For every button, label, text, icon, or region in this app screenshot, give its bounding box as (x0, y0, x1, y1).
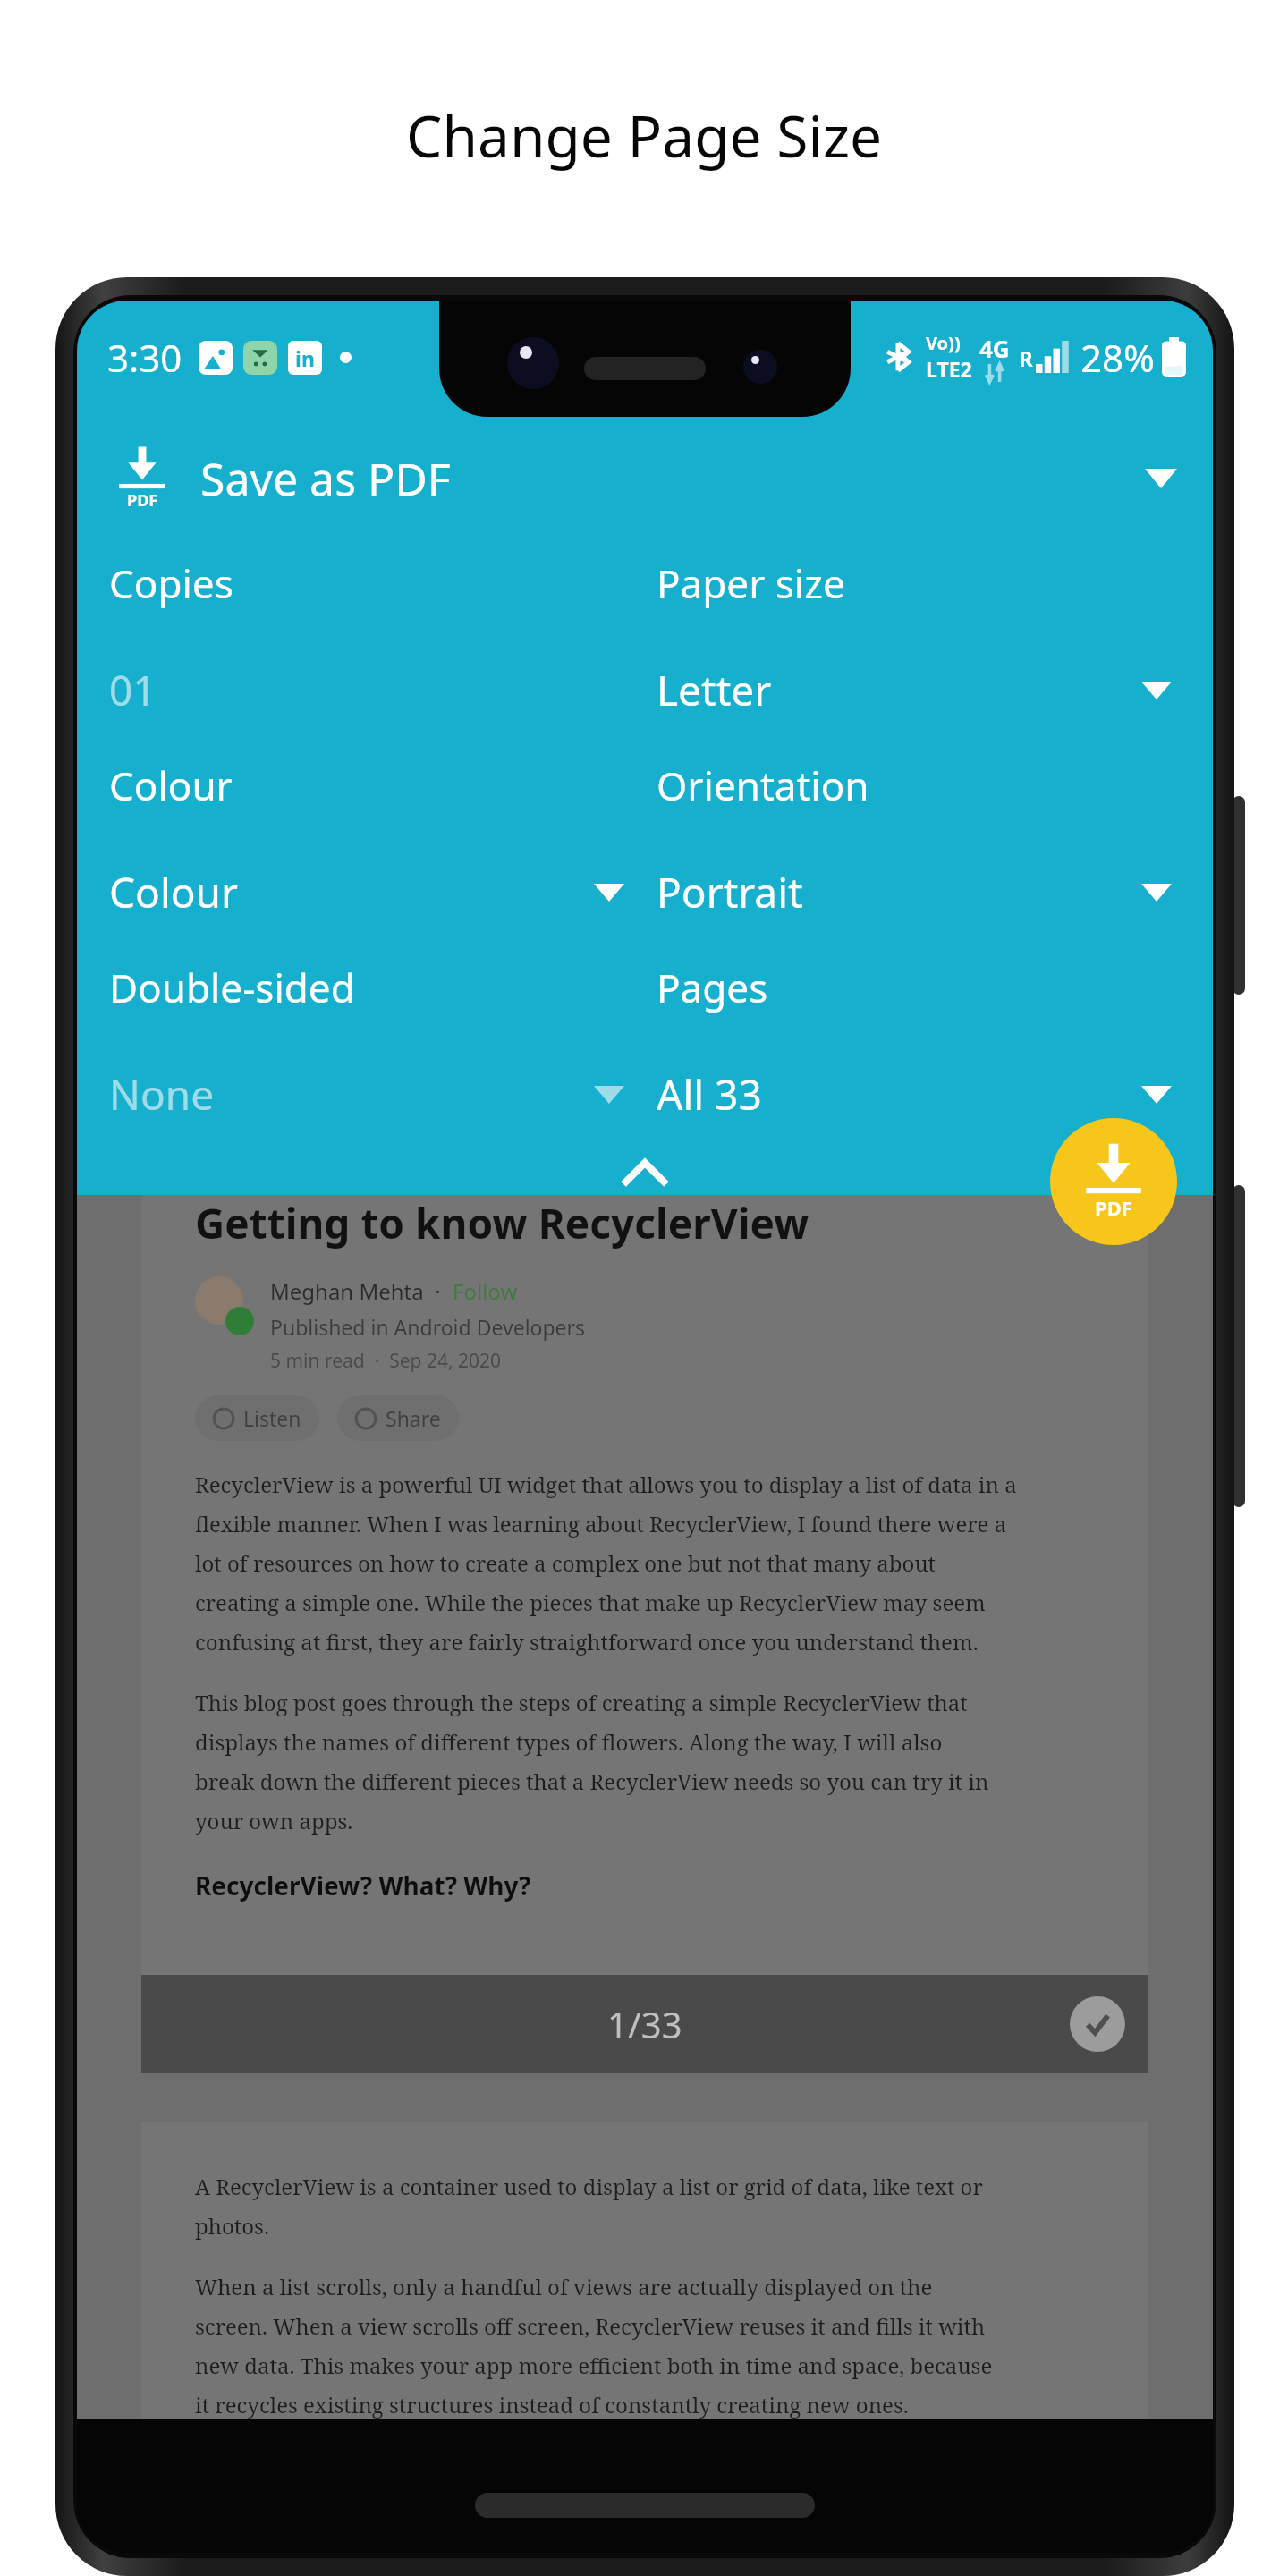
button[interactable]: Paper size (657, 544, 1181, 746)
staticText: it recycles existing structures instead … (195, 2390, 909, 2419)
staticText: 01 (109, 662, 157, 718)
staticText: Vo)) (926, 331, 961, 355)
staticText: Follow (453, 1276, 518, 1306)
staticText: your own apps. (195, 1806, 353, 1835)
staticText: PDF (127, 489, 158, 512)
staticText: 1/33 (607, 2000, 682, 2048)
staticText: RecyclerView? What? Why? (195, 1868, 531, 1902)
staticText: Save as PDF (200, 448, 451, 509)
staticText: break down the different pieces that a R… (195, 1767, 989, 1796)
staticText: Colour (109, 758, 233, 812)
staticText: Letter (657, 662, 772, 718)
staticText: PDF (1095, 1194, 1132, 1221)
button[interactable]: Collapse print options (77, 1150, 1213, 1195)
staticText: flexible manner. When I was learning abo… (195, 1509, 1007, 1538)
button[interactable]: 1/33 (141, 1975, 1148, 2073)
staticText: Pages (657, 961, 768, 1014)
button[interactable]: Pages (657, 948, 1181, 1150)
button[interactable]: Listen (195, 1395, 319, 1441)
button[interactable]: PDF (77, 413, 1213, 544)
staticText: When a list scrolls, only a handful of v… (195, 2272, 933, 2301)
other: Page selected (1070, 1996, 1125, 2052)
staticText: Portrait (657, 864, 803, 920)
button[interactable]: Copies (109, 544, 633, 746)
staticText: Listen (243, 1404, 301, 1432)
button[interactable]: Orientation (657, 746, 1181, 948)
staticText: R (1019, 343, 1033, 373)
staticText: Colour (109, 864, 239, 920)
staticText: Orientation (657, 758, 869, 812)
staticText: LTE2 (926, 355, 972, 383)
staticText: lot of resources on how to create a comp… (195, 1548, 936, 1578)
staticText: This blog post goes through the steps of… (195, 1688, 968, 1717)
staticText: screen. When a view scrolls off screen, … (195, 2311, 986, 2341)
button[interactable]: Double-sided (109, 948, 633, 1150)
staticText: A RecyclerView is a container used to di… (195, 2172, 983, 2201)
staticText: Share (386, 1404, 441, 1432)
staticText: Copies (109, 556, 233, 610)
staticText: None (109, 1066, 215, 1123)
staticText: Double-sided (109, 961, 355, 1014)
staticText: Published in Android Developers (270, 1313, 586, 1341)
staticText: photos. (195, 2211, 269, 2241)
staticText: Change Page Size (406, 97, 883, 174)
staticText: RecyclerView is a powerful UI widget tha… (195, 1470, 1017, 1499)
staticText: creating a simple one. While the pieces … (195, 1588, 986, 1617)
button[interactable]: Save as PDF (1050, 1118, 1177, 1245)
staticText: new data. This makes your app more effic… (195, 2351, 993, 2380)
staticText: confusing at first, they are fairly stra… (195, 1627, 979, 1657)
staticText: 5 min read · Sep 24, 2020 (270, 1348, 502, 1374)
staticText: 28% (1080, 332, 1155, 383)
staticText: All 33 (657, 1066, 762, 1123)
staticText: Getting to know RecyclerView (195, 1195, 809, 1251)
staticText: 3:30 (107, 332, 182, 383)
staticText: Meghan Mehta · (270, 1276, 453, 1306)
staticText: in (295, 344, 315, 372)
button[interactable]: Share (337, 1395, 459, 1441)
staticText: displays the names of different types of… (195, 1727, 943, 1757)
button[interactable]: Colour (109, 746, 633, 948)
staticText: 4G (979, 333, 1010, 364)
staticText: Paper size (657, 556, 845, 610)
